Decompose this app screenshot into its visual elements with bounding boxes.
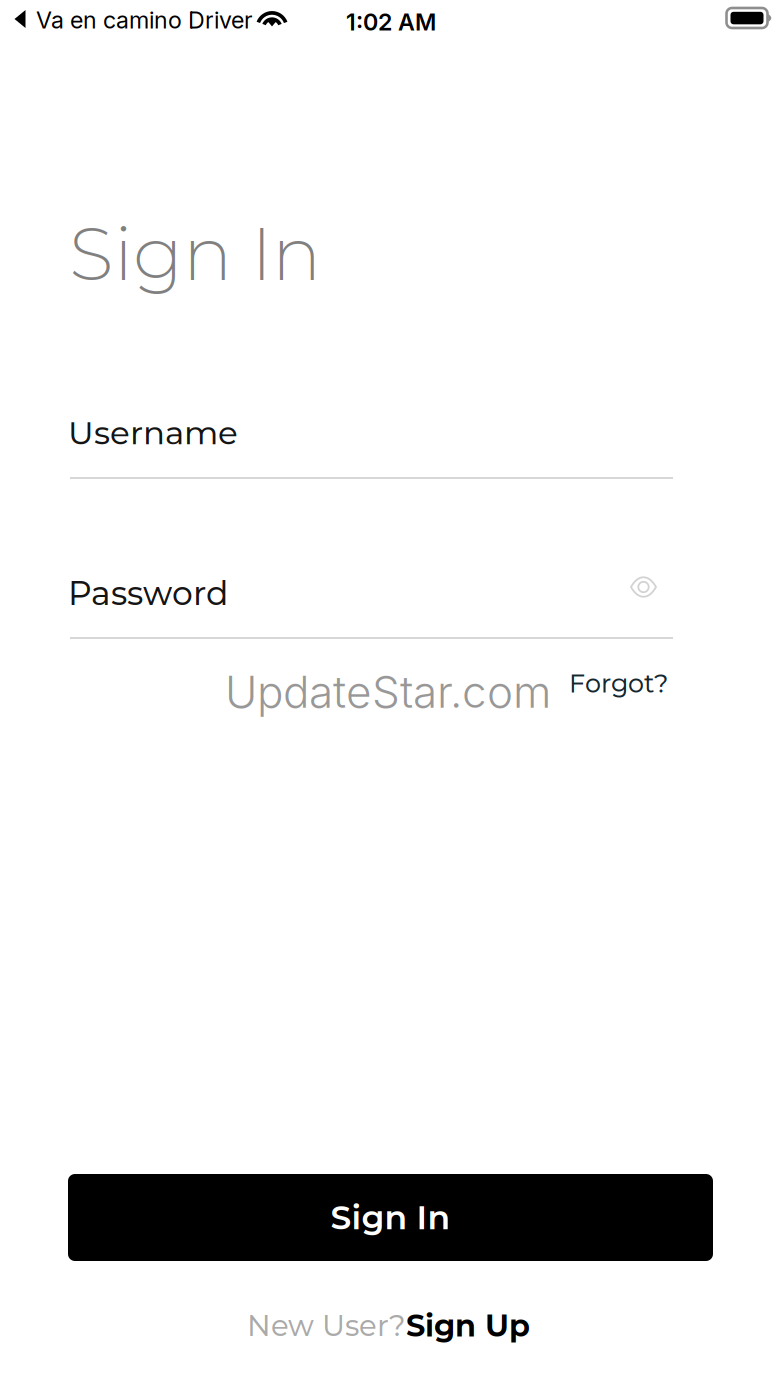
staticText: Password — [68, 573, 228, 613]
staticText: 1:02 AM — [346, 8, 436, 36]
button[interactable]: Sign Up — [406, 1307, 530, 1344]
button[interactable]: Show password — [619, 567, 668, 607]
staticText: New User? — [247, 1308, 406, 1343]
staticText: Va en camino Driver — [36, 6, 253, 34]
staticText: Forgot? — [569, 668, 668, 699]
button[interactable]: Forgot? — [562, 661, 675, 706]
staticText: Sign Up — [406, 1307, 530, 1344]
button[interactable]: Sign In — [68, 1174, 713, 1261]
staticText: Username — [68, 413, 238, 452]
staticText: UpdateStar.com — [225, 665, 551, 718]
staticText: Sign In — [69, 209, 321, 298]
staticText: Sign In — [330, 1197, 450, 1237]
